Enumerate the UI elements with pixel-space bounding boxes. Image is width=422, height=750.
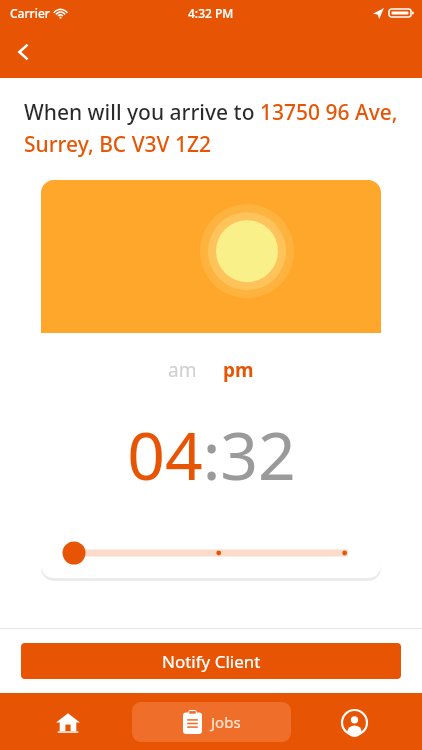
staticText: Carrier	[10, 5, 50, 21]
button[interactable]: Jobs	[132, 702, 291, 742]
staticText: Notify Client	[162, 650, 261, 673]
button[interactable]: Time slider	[41, 533, 381, 573]
staticText: When will you arrive to 13750 96 Ave, Su…	[24, 98, 402, 158]
button[interactable]: Home	[4, 700, 132, 744]
staticText: Jobs	[211, 712, 241, 732]
button[interactable]: am	[162, 353, 203, 387]
button[interactable]: Back	[0, 28, 48, 76]
button[interactable]: Profile	[291, 700, 418, 744]
staticText: am	[168, 357, 197, 383]
staticText: pm	[223, 357, 254, 383]
staticText: 4:32 PM	[188, 5, 234, 21]
button[interactable]: Notify Client	[21, 643, 401, 679]
button[interactable]: pm	[217, 353, 260, 387]
staticText: 04:32	[127, 409, 296, 499]
